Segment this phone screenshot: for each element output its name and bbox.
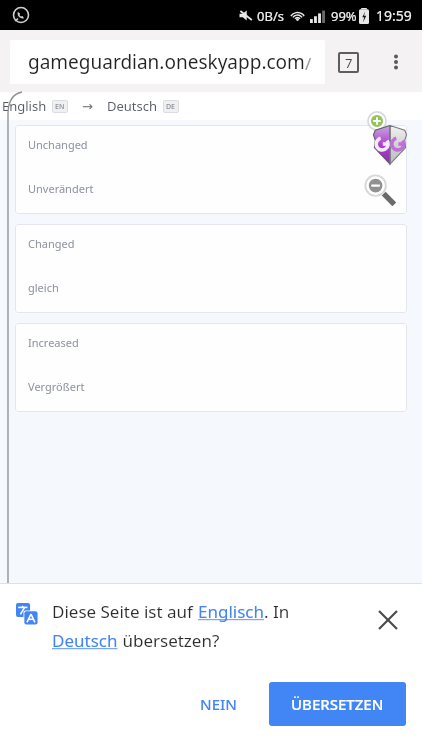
staticText: Changed <box>28 236 75 251</box>
staticText: Deutsch <box>52 629 118 652</box>
staticText: English <box>2 97 47 115</box>
staticText: EN <box>55 102 65 112</box>
staticText: 7 <box>345 54 353 72</box>
staticText: gameguardian.oneskyapp.com <box>28 49 305 75</box>
button[interactable]: Deutsch <box>52 629 118 652</box>
staticText: Increased <box>28 335 79 350</box>
staticText: gleich <box>28 280 59 295</box>
staticText: / <box>305 52 312 75</box>
staticText: . In <box>264 600 290 623</box>
button[interactable]: Zoom in <box>365 109 395 139</box>
button[interactable]: Close <box>368 600 408 640</box>
button[interactable]: Englisch <box>198 600 264 623</box>
staticText: DE <box>166 102 176 112</box>
button[interactable]: More options <box>378 44 414 80</box>
button[interactable]: gameguardian.oneskyapp.com <box>10 40 325 84</box>
button[interactable]: ÜBERSETZEN <box>269 682 406 726</box>
staticText: NEIN <box>200 694 237 714</box>
staticText: Vergrößert <box>28 379 85 394</box>
button[interactable]: Unchanged <box>15 125 407 214</box>
staticText: Deutsch <box>107 97 158 115</box>
staticText: → <box>82 99 93 114</box>
button[interactable]: GameGuardian <box>367 121 413 167</box>
staticText: Unverändert <box>28 181 94 196</box>
staticText: 19:59 <box>376 6 412 25</box>
button[interactable]: Tabs, 7 open <box>330 44 366 80</box>
staticText: Diese Seite ist auf <box>52 600 198 623</box>
staticText: 99% <box>331 7 357 25</box>
staticText: übersetzen? <box>118 629 220 652</box>
staticText: Englisch <box>198 600 264 623</box>
button[interactable]: Increased <box>15 323 407 412</box>
staticText: 0B/s <box>257 7 284 25</box>
staticText: ÜBERSETZEN <box>291 694 384 714</box>
button[interactable]: Changed <box>15 224 407 313</box>
button[interactable]: Zoom out <box>362 172 396 206</box>
staticText: Unchanged <box>28 137 88 152</box>
button[interactable]: NEIN <box>182 684 255 724</box>
